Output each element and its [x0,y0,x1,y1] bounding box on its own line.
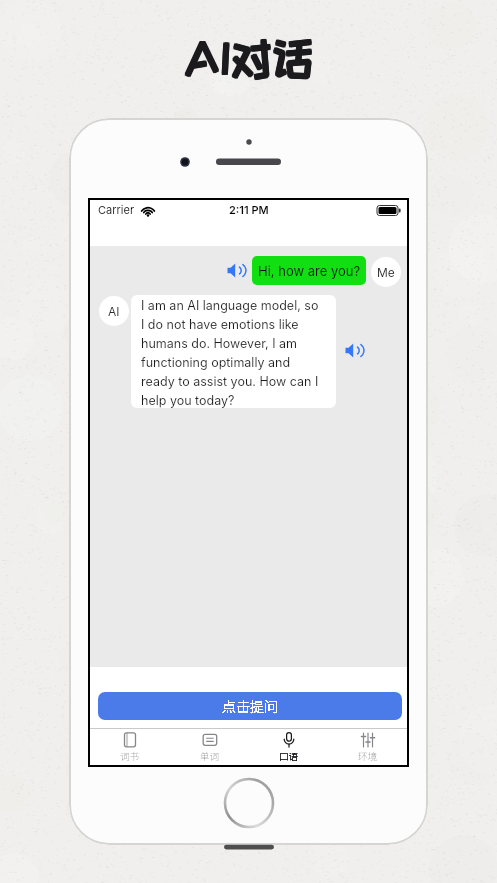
staticText: I am an AI language model, so I do not h… [141,298,319,408]
staticText: 口语 [279,749,299,763]
button[interactable] [227,262,244,279]
button[interactable]: 词书 [90,729,170,765]
staticText: 点击提问 [222,696,278,716]
staticText: AI对话 [183,34,313,79]
staticText: 口语 [279,749,299,763]
staticText: AI [108,304,120,319]
staticText: Carrier [98,203,135,216]
button[interactable]: 单词 [170,729,249,765]
staticText: 口语 [279,749,299,763]
staticText: 点击提问 [222,696,278,716]
staticText: 点击提问 [222,696,278,716]
staticText: 口语 [279,749,299,763]
staticText: AI对话 [184,34,314,79]
staticText: 口语 [279,749,299,763]
staticText: 点击提问 [222,696,278,716]
staticText: 口语 [279,749,299,763]
button[interactable] [345,342,362,359]
staticText: 点击提问 [222,696,278,716]
button[interactable]: 点击提问 [98,692,402,720]
staticText: AI对话 [185,34,315,79]
staticText: 环境 [358,749,378,763]
button[interactable]: 环境 [328,729,407,765]
staticText: AI对话 [184,35,314,80]
staticText: 点击提问 [222,696,278,716]
staticText: 口语 [279,749,299,763]
staticText: AI对话 [185,35,315,80]
staticText: AI对话 [184,36,314,81]
staticText: AI对话 [183,35,313,80]
staticText: AI对话 [185,36,315,81]
staticText: AI对话 [183,36,313,81]
staticText: 点击提问 [222,696,278,716]
staticText: Me [377,265,395,280]
staticText: 口语 [279,749,299,763]
staticText: 点击提问 [222,696,278,716]
staticText: Hi, how are you? [258,263,361,279]
staticText: 2:11 PM [229,203,269,216]
staticText: 词书 [120,749,140,763]
button[interactable]: 口语 [249,729,328,765]
button[interactable]: Hi, how are you? [252,256,366,285]
staticText: 点击提问 [222,696,278,716]
staticText: 单词 [200,749,220,763]
staticText: 口语 [279,749,299,763]
